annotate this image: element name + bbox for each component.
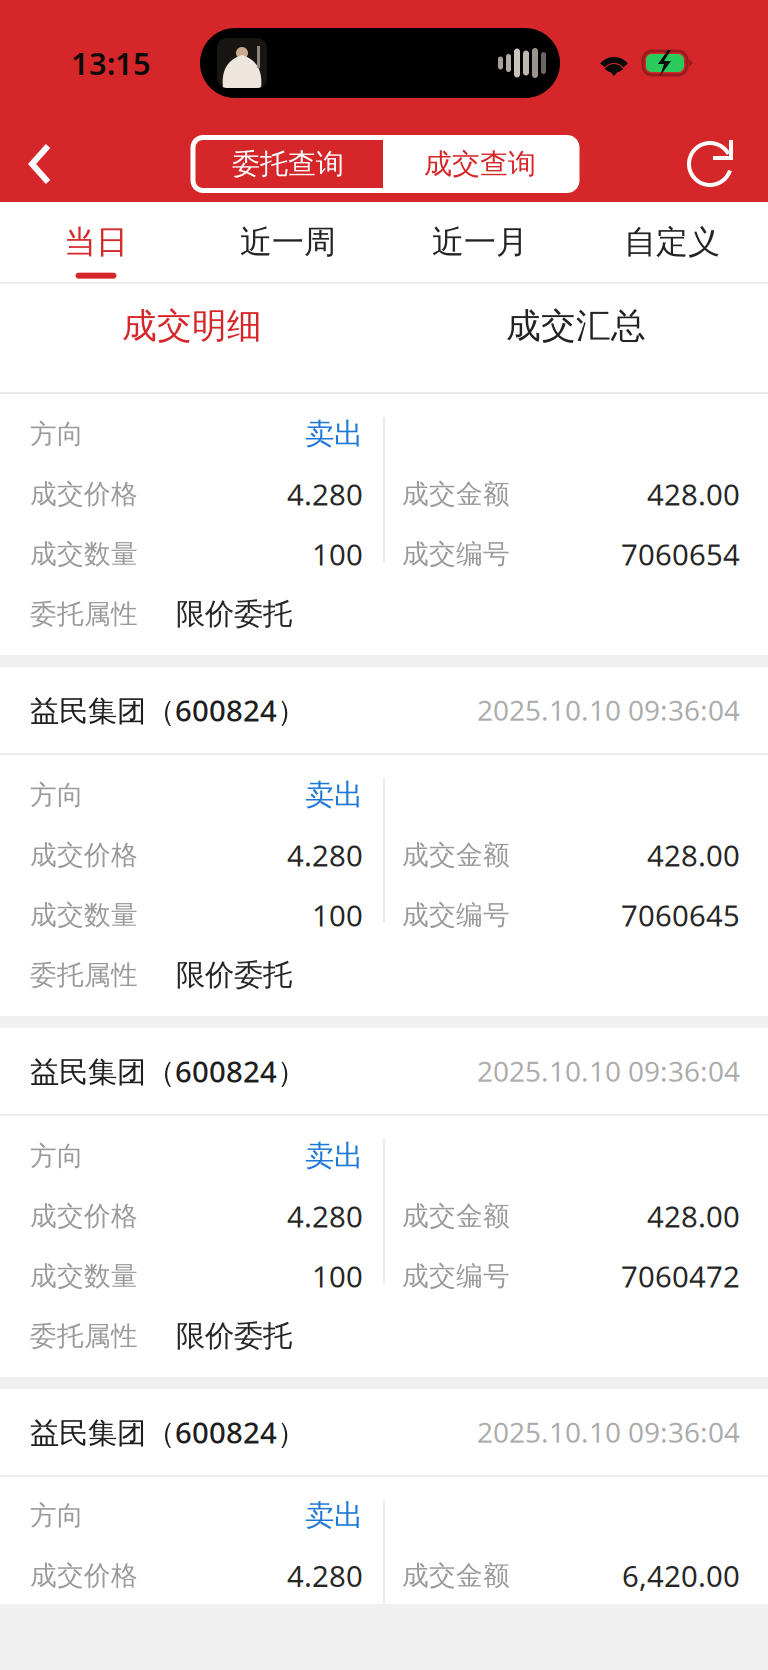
- staticText: 成交明细: [122, 305, 262, 347]
- staticText: 方向: [30, 779, 84, 811]
- staticText: 成交金额: [402, 1200, 510, 1232]
- button[interactable]: 成交查询: [383, 137, 577, 190]
- staticText: 428.00: [647, 835, 740, 874]
- staticText: 100: [312, 534, 363, 573]
- staticText: 益民集团（600824）: [30, 1051, 306, 1090]
- staticText: 方向: [30, 1140, 84, 1172]
- staticText: 卖出: [305, 1497, 363, 1533]
- button[interactable]: 委托查询: [193, 137, 383, 190]
- staticText: 成交数量: [30, 1260, 138, 1292]
- staticText: 6,420.00: [622, 1556, 740, 1595]
- staticText: 7060645: [621, 895, 740, 934]
- button[interactable]: 成交汇总: [384, 284, 768, 392]
- staticText: 近一周: [240, 222, 336, 262]
- staticText: 4.280: [287, 474, 363, 513]
- staticText: 100: [312, 895, 363, 934]
- staticText: 成交价格: [30, 1200, 138, 1232]
- staticText: 4.280: [287, 1196, 363, 1235]
- staticText: 卖出: [305, 777, 363, 813]
- staticText: 成交汇总: [506, 305, 646, 347]
- staticText: 限价委托: [176, 596, 292, 632]
- staticText: 委托属性: [30, 959, 138, 991]
- staticText: 自定义: [624, 222, 720, 262]
- button[interactable]: 自定义: [576, 202, 768, 282]
- staticText: 成交数量: [30, 899, 138, 931]
- staticText: 方向: [30, 1499, 84, 1532]
- staticText: 限价委托: [176, 1318, 292, 1354]
- staticText: 成交金额: [402, 839, 510, 871]
- staticText: 428.00: [647, 474, 740, 513]
- staticText: 卖出: [305, 416, 363, 452]
- staticText: 428.00: [647, 1196, 740, 1235]
- button[interactable]: Back: [0, 126, 113, 202]
- staticText: 100: [312, 1256, 363, 1295]
- staticText: 成交数量: [30, 538, 138, 570]
- button[interactable]: Refresh: [628, 126, 768, 202]
- staticText: 益民集团（600824）: [30, 690, 306, 729]
- staticText: 委托查询: [232, 147, 344, 181]
- staticText: 成交价格: [30, 1559, 138, 1592]
- button[interactable]: 近一周: [192, 202, 384, 282]
- staticText: 2025.10.10 09:36:04: [477, 691, 740, 729]
- staticText: 7060472: [621, 1256, 740, 1295]
- button[interactable]: 近一月: [384, 202, 576, 282]
- staticText: 4.280: [287, 1556, 363, 1595]
- button[interactable]: 当日: [0, 202, 192, 282]
- staticText: 方向: [30, 418, 84, 450]
- staticText: 成交编号: [402, 899, 510, 931]
- staticText: 4.280: [287, 835, 363, 874]
- staticText: 2025.10.10 09:36:04: [477, 1052, 740, 1090]
- staticText: 卖出: [305, 1138, 363, 1174]
- staticText: 13:15: [71, 43, 151, 83]
- staticText: 委托属性: [30, 1320, 138, 1352]
- staticText: 成交金额: [402, 478, 510, 510]
- button[interactable]: 成交明细: [0, 284, 384, 392]
- staticText: 成交金额: [402, 1559, 510, 1592]
- staticText: 益民集团（600824）: [30, 1412, 306, 1451]
- staticText: 委托属性: [30, 598, 138, 630]
- staticText: 成交编号: [402, 538, 510, 570]
- staticText: 2025.10.10 09:36:04: [477, 1413, 740, 1451]
- staticText: 成交价格: [30, 839, 138, 871]
- staticText: 近一月: [432, 222, 528, 262]
- staticText: 成交查询: [424, 147, 536, 181]
- staticText: 成交编号: [402, 1260, 510, 1292]
- staticText: 限价委托: [176, 957, 292, 993]
- staticText: 成交价格: [30, 478, 138, 510]
- staticText: 7060654: [621, 534, 740, 573]
- staticText: 当日: [64, 222, 128, 262]
